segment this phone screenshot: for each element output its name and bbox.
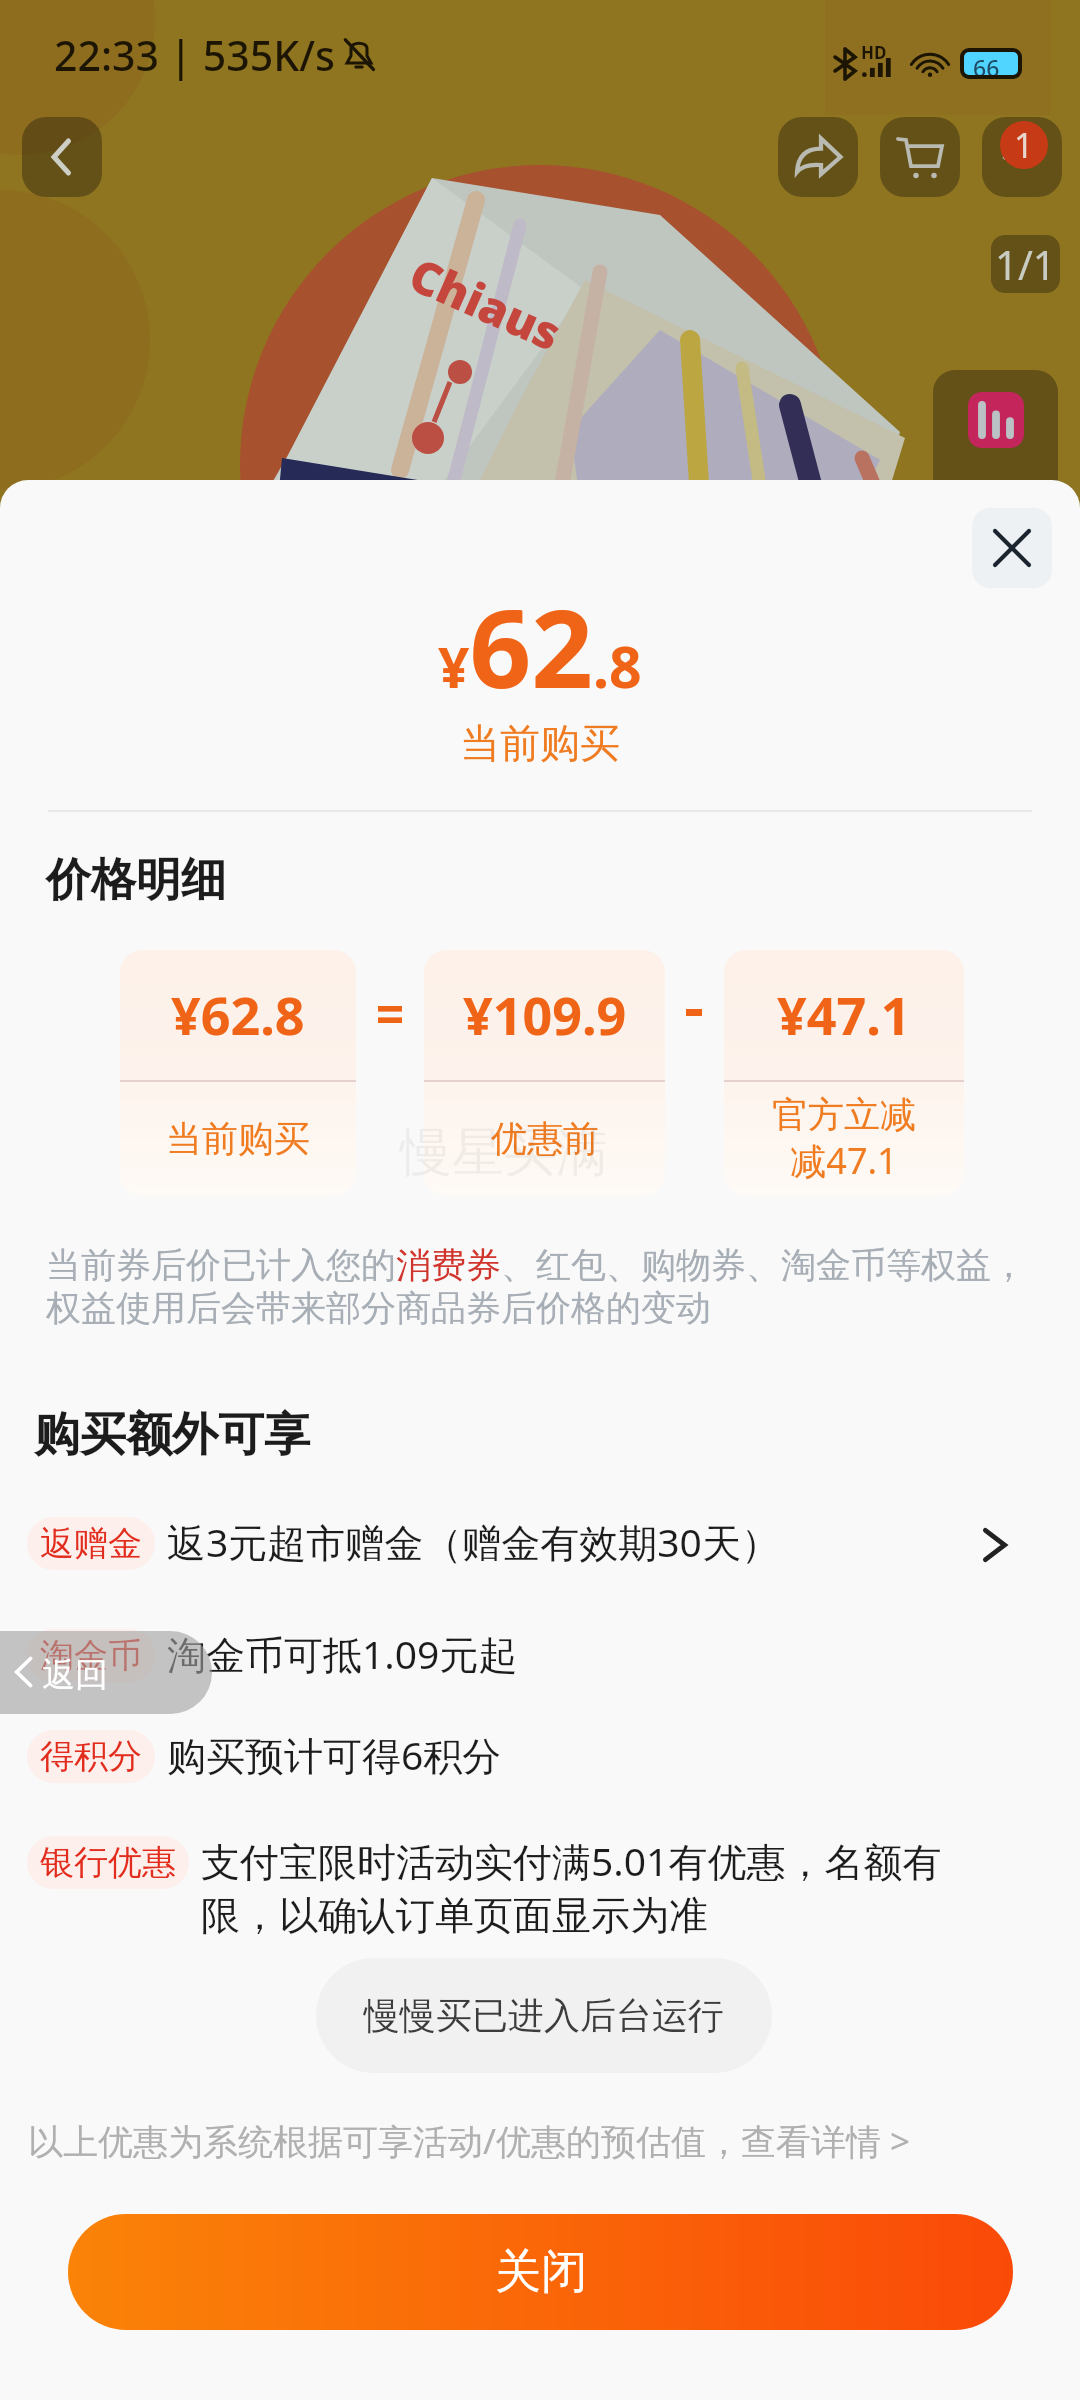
- staticText: 22:33 | 535K/s: [54, 27, 335, 83]
- button[interactable]: 关闭: [68, 2214, 1013, 2330]
- staticText: 当前券后价已计入您的消费券、红包、购物券、淘金币等权益，权益使用后会带来部分商品…: [46, 1243, 1036, 1331]
- button[interactable]: Image 1 of 1: [991, 235, 1060, 293]
- button[interactable]: 得积分: [0, 1730, 1080, 1783]
- button[interactable]: Live stream: [933, 370, 1058, 550]
- staticText: ¥47.1: [777, 979, 911, 1050]
- staticText: 官方立减 减47.1: [772, 1092, 916, 1185]
- button[interactable]: 返赠金: [0, 1517, 1080, 1570]
- staticText: 购买额外可享: [34, 1406, 310, 1464]
- staticText: 1/1: [995, 237, 1056, 291]
- staticText: Chiaus: [400, 242, 571, 365]
- staticText: 关闭: [495, 2243, 587, 2301]
- staticText: 淘金币可抵1.09元起: [167, 1627, 915, 1680]
- button[interactable]: Close: [972, 508, 1052, 588]
- button[interactable]: 以上优惠为系统根据可享活动/优惠的预估值，查看详情 >: [28, 2117, 911, 2165]
- button[interactable]: ¥47.1: [724, 950, 964, 1196]
- staticText: 返3元超市赠金（赠金有效期30天）: [167, 1515, 915, 1568]
- button[interactable]: 淘金币: [0, 1629, 1080, 1682]
- staticText: 支付宝限时活动实付满5.01有优惠，名额有限，以确认订单页面显示为准: [201, 1834, 949, 1941]
- button[interactable]: Shopping cart: [880, 117, 960, 197]
- staticText: ¥62.8: [438, 573, 642, 720]
- staticText: 66: [973, 52, 1000, 75]
- button[interactable]: Return: [0, 1631, 212, 1714]
- staticText: 慢星买满: [400, 1120, 608, 1186]
- staticText: HD: [861, 41, 887, 64]
- button[interactable]: Share: [778, 117, 858, 197]
- button[interactable]: 慢慢买已进入后台运行: [316, 1958, 772, 2073]
- staticText: 慢慢买已进入后台运行: [364, 1993, 724, 2038]
- staticText: 淘金币: [40, 1634, 142, 1677]
- staticText: 银行优惠: [40, 1841, 176, 1884]
- staticText: 1: [1014, 122, 1034, 168]
- button[interactable]: More options: [982, 117, 1062, 197]
- staticText: 优惠前: [491, 1116, 599, 1161]
- staticText: 返回: [42, 1654, 108, 1696]
- staticText: 价格明细: [46, 852, 226, 909]
- staticText: ¥109.9: [463, 979, 627, 1050]
- button[interactable]: ¥62.8: [120, 950, 356, 1196]
- staticText: ¥62.8: [171, 979, 305, 1050]
- staticText: 当前购买: [166, 1116, 310, 1161]
- button[interactable]: 银行优惠: [0, 1836, 1080, 1943]
- button[interactable]: Back: [22, 117, 102, 197]
- staticText: 得积分: [40, 1735, 142, 1778]
- button[interactable]: ¥109.9: [424, 950, 665, 1196]
- staticText: 购买预计可得6积分: [167, 1728, 915, 1781]
- staticText: 当前购买: [460, 718, 620, 768]
- staticText: 返赠金: [40, 1522, 142, 1565]
